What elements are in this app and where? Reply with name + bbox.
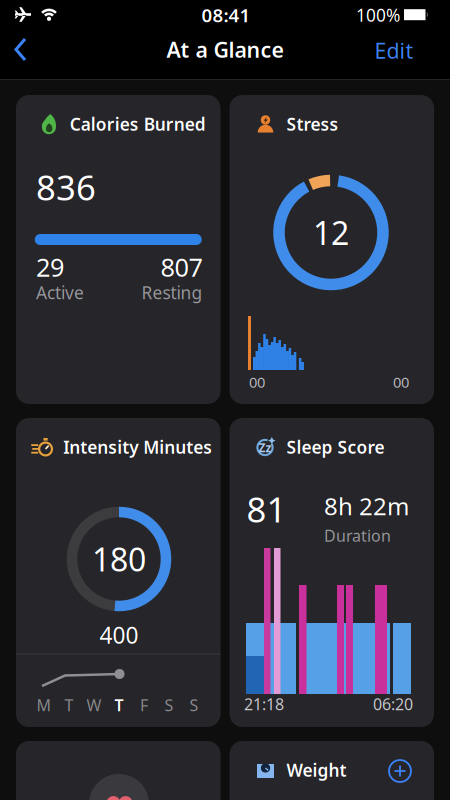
button[interactable]: Edit [374,36,413,65]
staticText: W [86,694,101,716]
staticText: Edit [374,36,413,65]
staticText: Calories Burned [70,112,206,135]
staticText: 08:41 [201,3,250,27]
button[interactable]: Intensity Minutes [16,418,220,727]
staticText: 8h 22m [324,490,409,522]
staticText: Resting [141,281,202,304]
staticText: 836 [36,164,96,210]
staticText: Weight [286,758,346,781]
staticText: 21:18 [244,693,284,715]
staticText: 06:20 [373,693,413,715]
staticText: S [189,694,198,716]
staticText: Duration [324,525,391,546]
button[interactable]: Zz [229,418,434,727]
staticText: T [114,694,123,716]
button[interactable]: Back [0,30,44,70]
button[interactable]: Weight [229,741,434,800]
staticText: 00 [393,372,409,392]
staticText: F [140,694,148,716]
staticText: 807 [160,250,202,284]
staticText: T [64,694,73,716]
button[interactable]: Add weight [388,759,412,783]
button[interactable] [16,741,220,800]
staticText: 12 [313,211,349,254]
staticText: Intensity Minutes [63,435,212,458]
button[interactable]: Calories Burned [16,95,220,404]
staticText: M [36,694,51,716]
staticText: 00 [249,372,265,392]
staticText: 81 [246,486,286,532]
staticText: Sleep Score [286,435,384,458]
staticText: 100% [356,3,400,26]
staticText: Active [36,281,84,304]
staticText: At a Glance [166,35,283,64]
staticText: Stress [286,112,338,135]
staticText: S [164,694,173,716]
staticText: 29 [36,250,64,284]
staticText: 180 [92,538,146,580]
button[interactable]: Stress [229,95,434,404]
staticText: 400 [99,620,138,650]
staticText: Zz [258,439,271,455]
